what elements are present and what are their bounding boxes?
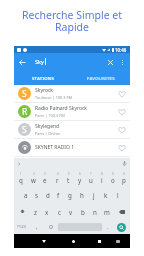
button[interactable]: Add to favourites <box>116 88 128 100</box>
button[interactable]: 7 <box>85 169 96 186</box>
staticText: w <box>31 176 36 184</box>
button[interactable]: b <box>77 203 89 220</box>
staticText: o <box>111 176 115 184</box>
button[interactable]: f <box>53 186 64 203</box>
button[interactable]: More options <box>116 56 128 68</box>
staticText: n <box>93 208 97 216</box>
staticText: u <box>89 176 93 184</box>
staticText: Recherche Simple et Rapide <box>11 8 133 34</box>
button[interactable]: , <box>30 220 44 234</box>
staticText: Paris | 100.3 FM <box>35 113 65 118</box>
staticText: k <box>104 191 108 199</box>
staticText: S <box>22 88 27 100</box>
staticText: p <box>122 176 126 184</box>
button[interactable]: FAVOURITES <box>72 70 130 85</box>
button[interactable]: 5 <box>63 169 74 186</box>
button[interactable]: d <box>42 186 53 203</box>
button[interactable]: k <box>100 186 112 203</box>
button[interactable]: 3 <box>39 169 51 186</box>
staticText: Paris | Online <box>35 131 61 136</box>
staticText: r <box>56 176 59 184</box>
staticText: l <box>117 191 119 199</box>
staticText: c <box>58 208 61 216</box>
staticText: 8 <box>101 172 103 176</box>
staticText: m <box>104 208 110 216</box>
staticText: d <box>46 191 50 199</box>
button[interactable]: n <box>89 203 101 220</box>
staticText: . <box>107 223 109 231</box>
button[interactable]: h <box>76 186 88 203</box>
staticText: 1 <box>20 172 22 176</box>
staticText: Skylegend <box>35 123 60 130</box>
button[interactable]: Add to favourites <box>116 106 128 118</box>
button[interactable]: x <box>41 203 53 220</box>
button[interactable]: Add to favourites <box>116 124 128 136</box>
staticText: f <box>57 191 60 199</box>
button[interactable]: Home <box>66 234 81 248</box>
button[interactable]: Back <box>36 234 51 248</box>
button[interactable]: ?123 <box>14 220 30 234</box>
button[interactable]: s <box>31 186 42 203</box>
button[interactable]: . <box>102 220 113 234</box>
button[interactable]: SKYNET RADIO 1 <box>14 139 130 157</box>
staticText: 9 <box>112 172 114 176</box>
button[interactable]: v <box>65 203 77 220</box>
button[interactable]: 4 <box>51 169 63 186</box>
button[interactable]: 0 <box>118 169 129 186</box>
staticText: q <box>19 176 23 184</box>
staticText: ?123 <box>17 224 27 230</box>
button[interactable]: Backspace <box>113 203 130 220</box>
staticText: 7 <box>90 172 92 176</box>
staticText: Skyrock <box>35 87 54 94</box>
button[interactable]: S <box>14 121 130 139</box>
button[interactable]: Emoji <box>44 220 58 234</box>
staticText: e <box>43 176 47 184</box>
staticText: , <box>36 223 38 231</box>
button[interactable]: Add to favourites <box>116 142 128 154</box>
button[interactable]: Voice input <box>121 160 128 167</box>
button[interactable]: m <box>101 203 113 220</box>
button[interactable]: 1 <box>15 169 27 186</box>
button[interactable]: g <box>64 186 76 203</box>
staticText: FAVOURITES <box>87 75 115 81</box>
staticText: Radio Painard Skyrock <box>35 105 87 112</box>
staticText: 2 <box>33 172 35 176</box>
staticText: 10:46 <box>115 47 127 53</box>
staticText: 5 <box>68 172 70 176</box>
staticText: Sky <box>35 58 44 66</box>
staticText: z <box>34 208 37 216</box>
button[interactable]: 8 <box>96 169 107 186</box>
staticText: 6 <box>79 172 81 176</box>
button[interactable]: Back <box>16 56 28 68</box>
button[interactable]: STATIONS <box>14 70 72 85</box>
button[interactable]: Search <box>113 220 130 234</box>
staticText: t <box>67 176 70 184</box>
staticText: g <box>68 191 72 199</box>
button[interactable]: j <box>88 186 100 203</box>
staticText: s <box>35 191 38 199</box>
staticText: 4 <box>57 172 59 176</box>
staticText: Toulouse | 100.3 FM <box>35 95 73 100</box>
staticText: 3 <box>44 172 46 176</box>
staticText: a <box>24 191 28 199</box>
button[interactable]: Recent apps <box>92 234 107 248</box>
button[interactable]: Clear search <box>104 56 116 68</box>
button[interactable]: Shift <box>14 203 30 220</box>
button[interactable]: R <box>14 103 130 121</box>
button[interactable]: a <box>20 186 31 203</box>
button[interactable]: More suggestions <box>16 161 22 167</box>
staticText: b <box>81 208 85 216</box>
button[interactable]: c <box>53 203 65 220</box>
staticText: S <box>22 124 27 136</box>
button[interactable]: 9 <box>107 169 118 186</box>
button[interactable]: S <box>14 85 130 103</box>
staticText: 0 <box>123 172 125 176</box>
staticText: STATIONS <box>32 75 54 81</box>
button[interactable]: 6 <box>74 169 85 186</box>
button[interactable]: 2 <box>27 169 39 186</box>
button[interactable]: l <box>112 186 124 203</box>
staticText: j <box>93 191 95 199</box>
button[interactable]: z <box>30 203 41 220</box>
button[interactable]: Screenshot <box>110 234 125 248</box>
